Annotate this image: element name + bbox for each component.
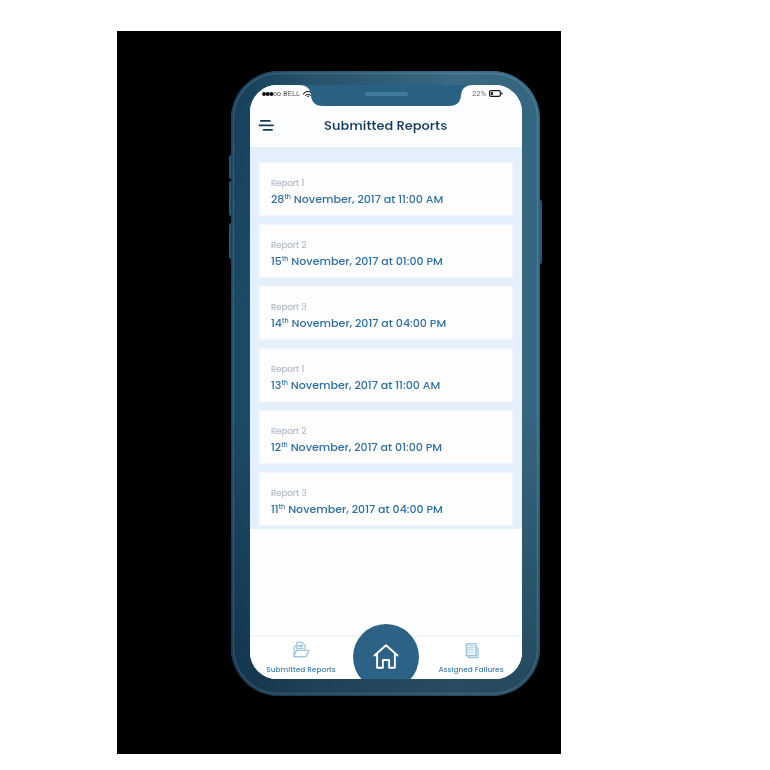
staticText: 12th November, 2017 at 01:00 PM xyxy=(271,439,443,454)
button[interactable]: Report 1 xyxy=(260,163,512,215)
staticText: Report 1 xyxy=(271,363,305,375)
staticText: Report 3 xyxy=(271,301,307,313)
button[interactable]: Report 2 xyxy=(260,225,512,277)
staticText: Assigned Failures xyxy=(438,664,504,674)
button[interactable]: Report 2 xyxy=(260,411,512,463)
button[interactable]: Submitted Reports xyxy=(250,636,352,674)
staticText: 15th November, 2017 at 01:00 PM xyxy=(271,253,443,268)
staticText: Report 2 xyxy=(271,425,307,437)
button[interactable]: Home xyxy=(353,624,419,679)
staticText: Report 3 xyxy=(271,487,307,499)
staticText: Report 2 xyxy=(271,239,307,251)
button[interactable]: Report 3 xyxy=(260,287,512,339)
staticText: Submitted Reports xyxy=(324,116,448,134)
button[interactable]: Report 3 xyxy=(260,473,512,525)
staticText: Report 1 xyxy=(271,177,305,189)
staticText: 13th November, 2017 at 11:00 AM xyxy=(271,377,441,392)
button[interactable]: Open navigation menu xyxy=(254,113,278,137)
staticText: 22% xyxy=(472,89,486,98)
staticText: BELL xyxy=(283,89,301,98)
staticText: Submitted Reports xyxy=(266,664,336,674)
button[interactable]: Assigned Failures xyxy=(420,636,522,674)
staticText: 28th November, 2017 at 11:00 AM xyxy=(271,191,444,206)
button[interactable]: Report 1 xyxy=(260,349,512,401)
staticText: 14th November, 2017 at 04:00 PM xyxy=(271,315,447,330)
staticText: 11th November, 2017 at 04:00 PM xyxy=(271,501,443,516)
